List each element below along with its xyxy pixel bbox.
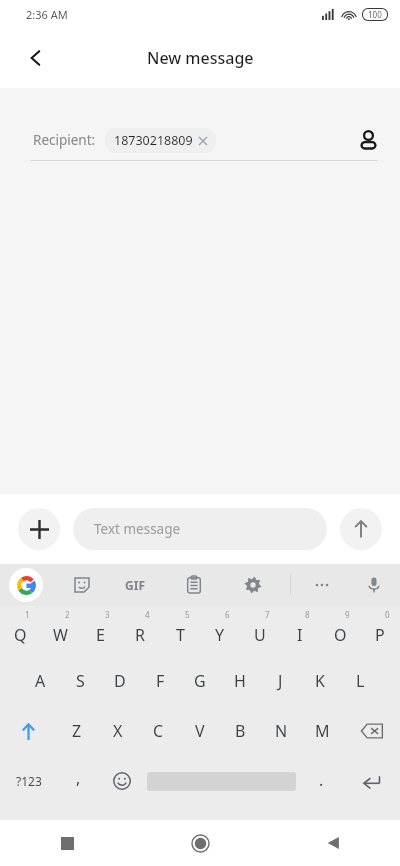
button[interactable]: L [340, 656, 380, 706]
staticText: Z [72, 720, 82, 742]
button[interactable]: M [302, 706, 343, 756]
button[interactable]: 0 [360, 606, 400, 656]
button[interactable]: Z [56, 706, 97, 756]
button[interactable]: Add attachment [18, 508, 60, 550]
button[interactable]: 3 [80, 606, 120, 656]
staticText: T [176, 624, 185, 646]
button[interactable]: 6 [200, 606, 240, 656]
staticText: D [114, 670, 126, 692]
staticText: X [113, 720, 123, 742]
staticText: F [156, 670, 165, 692]
button[interactable]: D [100, 656, 140, 706]
button[interactable]: Home [134, 820, 267, 866]
staticText: , [76, 767, 81, 789]
staticText: G [194, 670, 206, 692]
staticText: R [135, 624, 145, 646]
button[interactable]: . [300, 756, 343, 806]
button[interactable]: Voice input [357, 568, 391, 602]
staticText: 18730218809 [114, 132, 193, 149]
button[interactable]: Stickers [65, 568, 99, 602]
button[interactable]: ?123 [0, 756, 57, 806]
staticText: 3 [105, 609, 110, 620]
button[interactable]: Settings [236, 568, 270, 602]
staticText: 6 [225, 609, 230, 620]
button[interactable]: S [60, 656, 100, 706]
staticText: 100 [368, 9, 382, 20]
button[interactable]: 2 [40, 606, 80, 656]
staticText: B [235, 720, 246, 742]
staticText: 7 [265, 609, 270, 620]
staticText: H [234, 670, 246, 692]
button[interactable]: 9 [320, 606, 360, 656]
staticText: I [297, 624, 303, 646]
staticText: K [315, 670, 325, 692]
staticText: V [195, 720, 205, 742]
button[interactable]: A [20, 656, 60, 706]
button[interactable]: 5 [160, 606, 200, 656]
staticText: New message [147, 47, 254, 69]
staticText: O [334, 624, 347, 646]
button[interactable]: Send [340, 508, 382, 550]
button[interactable]: Clipboard [177, 568, 211, 602]
button[interactable]: More options [305, 568, 339, 602]
button[interactable]: 1 [0, 606, 40, 656]
staticText: P [375, 624, 385, 646]
button[interactable]: Shift [0, 706, 56, 756]
staticText: U [254, 624, 266, 646]
button[interactable]: J [260, 656, 300, 706]
staticText: 5 [185, 609, 190, 620]
button[interactable]: GIF [118, 568, 152, 602]
button[interactable]: 18730218809 [105, 128, 216, 153]
button[interactable]: V [179, 706, 220, 756]
staticText: Q [14, 624, 27, 646]
staticText: 2 [65, 609, 70, 620]
staticText: J [278, 670, 283, 692]
button[interactable]: 8 [280, 606, 320, 656]
button[interactable]: K [300, 656, 340, 706]
staticText: 1 [25, 609, 30, 620]
staticText: L [356, 670, 365, 692]
button[interactable]: 7 [240, 606, 280, 656]
staticText: W [53, 624, 68, 646]
button[interactable]: X [97, 706, 138, 756]
button[interactable]: G [180, 656, 220, 706]
button[interactable]: Backspace [343, 706, 400, 756]
button[interactable]: Recent apps [0, 820, 134, 866]
button[interactable]: Back [267, 820, 400, 866]
button[interactable]: N [261, 706, 302, 756]
staticText: Text message [94, 520, 181, 538]
button[interactable]: Back [14, 36, 58, 80]
staticText: 8 [305, 609, 310, 620]
button[interactable]: Choose contact [346, 120, 390, 160]
staticText: 4 [145, 609, 150, 620]
button[interactable]: Text message [73, 508, 327, 550]
button[interactable]: , [57, 756, 100, 806]
button[interactable]: Google search [9, 568, 43, 602]
staticText: 9 [345, 609, 350, 620]
staticText: ?123 [16, 773, 42, 789]
staticText: M [315, 720, 330, 742]
staticText: C [153, 720, 164, 742]
staticText: E [96, 624, 105, 646]
button[interactable]: 4 [120, 606, 160, 656]
staticText: N [275, 720, 288, 742]
staticText: S [76, 670, 85, 692]
staticText: A [35, 670, 46, 692]
button[interactable]: Enter [343, 756, 400, 806]
button[interactable]: Emoji [100, 756, 143, 806]
button[interactable]: H [220, 656, 260, 706]
button[interactable]: C [138, 706, 179, 756]
staticText: Recipient: [33, 131, 96, 149]
button[interactable]: B [220, 706, 261, 756]
button[interactable]: F [140, 656, 180, 706]
staticText: . [319, 769, 324, 791]
staticText: Y [215, 624, 225, 646]
staticText: 0 [385, 609, 390, 620]
staticText: 2:36 AM [26, 7, 68, 22]
